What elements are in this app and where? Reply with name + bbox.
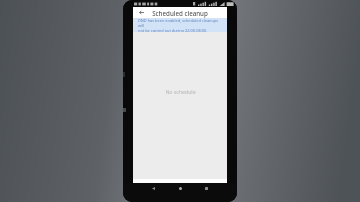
- staticText: No schedule: [165, 88, 196, 95]
- button[interactable]: Loading data...: [133, 179, 227, 197]
- button[interactable]: Back: [137, 8, 146, 17]
- staticText: Loading data...: [147, 185, 179, 191]
- button[interactable]: Recent apps: [201, 183, 212, 194]
- staticText: not be carried out during 22:00-08:00.: [138, 28, 208, 32]
- staticText: Scheduled cleanup: [152, 9, 208, 17]
- button[interactable]: DND has been enabled, scheduled cleanups…: [133, 18, 227, 32]
- button[interactable]: Home: [175, 183, 186, 194]
- button[interactable]: Back: [148, 183, 159, 194]
- staticText: DND has been enabled, scheduled cleanups…: [138, 18, 222, 28]
